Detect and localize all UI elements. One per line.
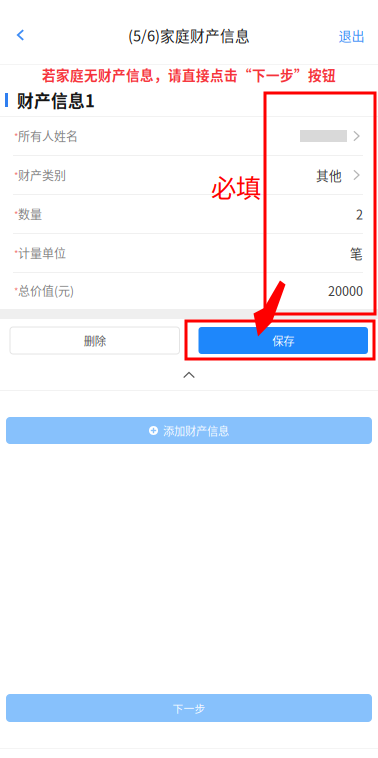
staticText: 删除 xyxy=(84,332,106,349)
staticText: * xyxy=(14,284,18,297)
staticText: 20000 xyxy=(328,281,363,300)
staticText: 笔 xyxy=(350,244,363,262)
staticText: 其他 xyxy=(316,166,342,184)
staticText: 财产信息1 xyxy=(17,88,95,112)
button[interactable]: 删除 xyxy=(10,327,179,354)
staticText: 2 xyxy=(356,205,363,223)
button[interactable]: 下一步 xyxy=(0,694,378,722)
staticText: 计量单位 xyxy=(18,244,66,262)
button[interactable]: 退出 xyxy=(331,16,372,54)
button[interactable]: * xyxy=(0,117,378,156)
staticText: 保存 xyxy=(272,332,294,349)
staticText: 所有人姓名 xyxy=(18,127,78,145)
button[interactable]: * xyxy=(0,156,378,195)
staticText: 添加财产信息 xyxy=(163,422,229,439)
staticText: * xyxy=(14,168,18,182)
staticText: 必填 xyxy=(211,168,261,205)
button[interactable]: 保存 xyxy=(198,327,368,354)
staticText: 若家庭无财产信息，请直接点击“下一步”按钮 xyxy=(42,65,336,84)
staticText: 财产类别 xyxy=(18,166,66,184)
staticText: * xyxy=(14,246,18,260)
button[interactable]: * xyxy=(0,234,378,273)
staticText: * xyxy=(14,129,18,143)
staticText: * xyxy=(14,207,18,221)
staticText: 下一步 xyxy=(172,700,205,716)
staticText: 退出 xyxy=(338,25,364,44)
button[interactable]: * xyxy=(0,195,378,234)
button[interactable]: 返回 xyxy=(0,16,41,54)
staticText: (5/6)家庭财产信息 xyxy=(128,24,250,46)
staticText: 数量 xyxy=(18,205,42,223)
button[interactable]: 收起 xyxy=(0,360,378,390)
button[interactable]: 添加财产信息 xyxy=(0,391,378,454)
staticText: 总价值(元) xyxy=(18,282,74,299)
button[interactable]: * xyxy=(0,273,378,309)
